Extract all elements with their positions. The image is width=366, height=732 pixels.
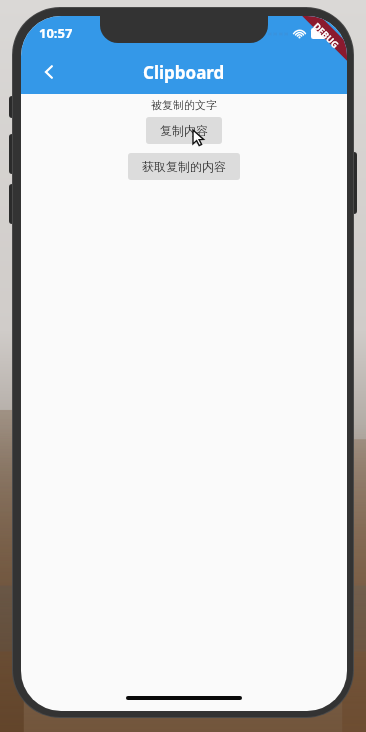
button[interactable]: Back xyxy=(29,52,69,92)
staticText: DEBUG xyxy=(311,20,342,50)
staticText: 10:57 xyxy=(39,24,73,42)
staticText: 获取复制的内容 xyxy=(142,159,226,174)
button[interactable]: 复制内容 xyxy=(146,117,222,144)
button[interactable]: 获取复制的内容 xyxy=(128,153,240,180)
staticText: 被复制的文字 xyxy=(151,98,217,112)
staticText: 复制内容 xyxy=(160,123,208,138)
staticText: Clipboard xyxy=(143,61,225,84)
